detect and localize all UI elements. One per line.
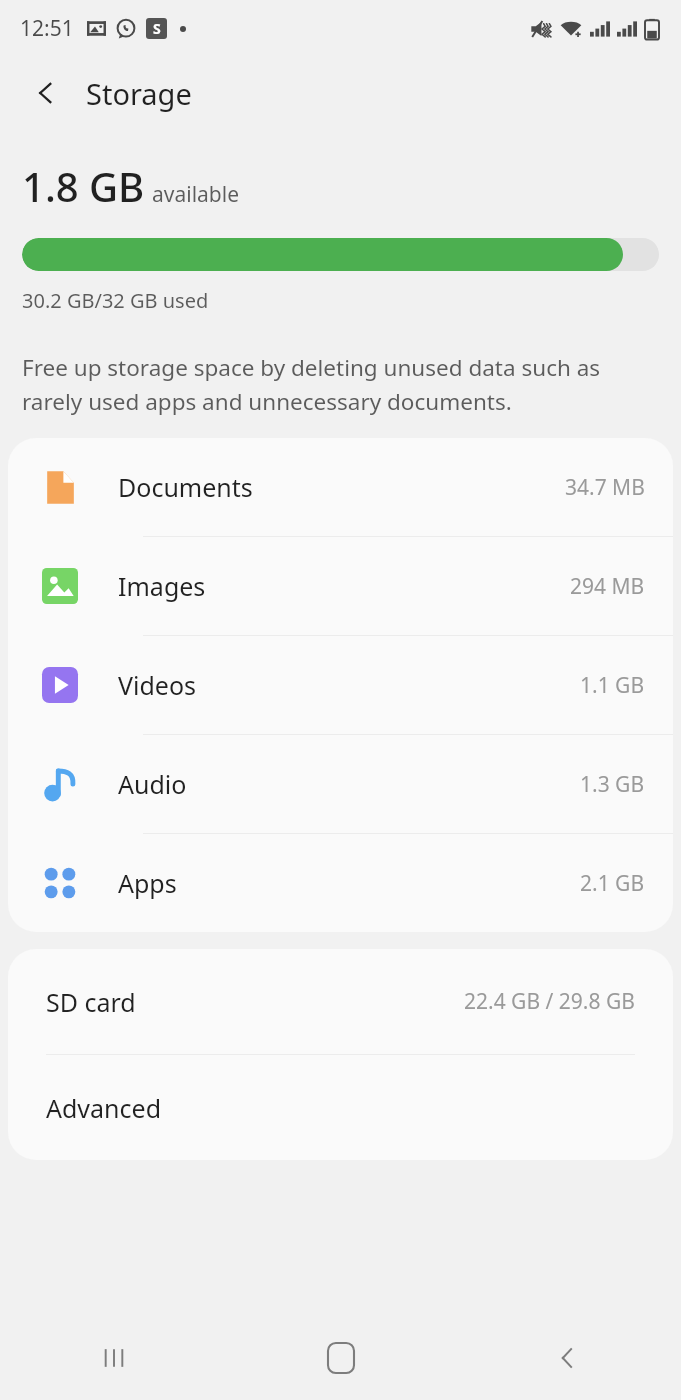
button[interactable]: Home <box>303 1320 379 1396</box>
staticText: Storage <box>86 74 192 113</box>
staticText: Apps <box>118 866 177 900</box>
staticText: SD card <box>46 985 136 1019</box>
staticText: Documents <box>118 470 253 504</box>
staticText: 2.1 GB <box>580 869 645 898</box>
button[interactable]: Back <box>530 1320 606 1396</box>
staticText: Audio <box>118 767 187 801</box>
staticText: S <box>153 19 161 38</box>
button[interactable]: Videos <box>8 636 673 734</box>
staticText: 294 MB <box>570 572 645 601</box>
button[interactable]: Images <box>8 537 673 635</box>
staticText: 34.7 MB <box>565 473 645 502</box>
staticText: available <box>152 180 240 209</box>
button[interactable]: Audio <box>8 735 673 833</box>
button[interactable]: Apps <box>8 834 673 932</box>
staticText: Advanced <box>46 1091 162 1125</box>
button[interactable]: Back <box>20 67 72 119</box>
button[interactable]: Documents <box>8 438 673 536</box>
button[interactable]: Advanced <box>8 1055 673 1160</box>
staticText: 1.1 GB <box>580 671 645 700</box>
staticText: 1.8 GB <box>22 159 145 213</box>
staticText: 30.2 GB/32 GB used <box>22 287 209 314</box>
staticText: 22.4 GB / 29.8 GB <box>464 987 635 1016</box>
staticText: 1.3 GB <box>580 770 645 799</box>
staticText: Videos <box>118 668 197 702</box>
button[interactable]: Recent apps <box>76 1320 152 1396</box>
staticText: 12:51 <box>20 14 74 43</box>
staticText: Images <box>118 569 206 603</box>
button[interactable]: SD card <box>8 949 673 1054</box>
staticText: Free up storage space by deleting unused… <box>22 352 659 416</box>
